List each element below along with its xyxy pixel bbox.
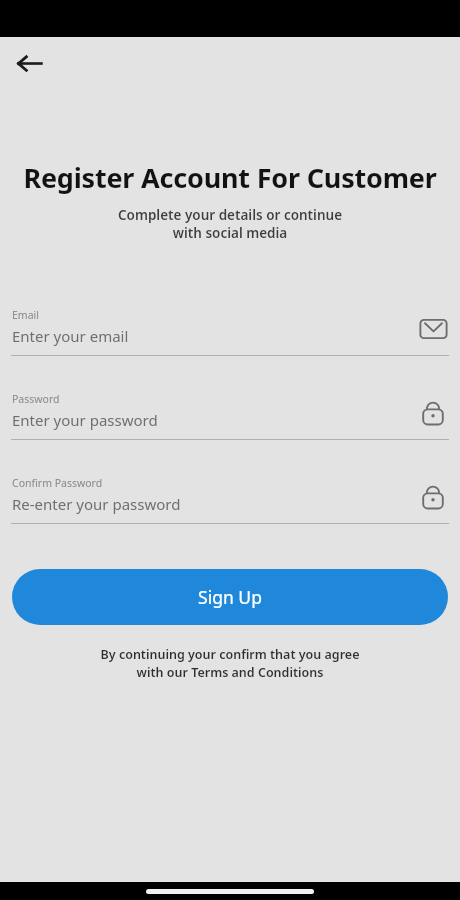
staticText: Enter your password — [12, 410, 158, 430]
staticText: Re-enter your password — [12, 494, 181, 514]
button[interactable]: Back — [10, 43, 50, 83]
staticText: Enter your email — [12, 326, 129, 346]
other: Password — [418, 398, 448, 428]
button[interactable]: Sign Up — [12, 569, 448, 625]
staticText: Register Account For Customer — [0, 159, 460, 196]
staticText: Email — [12, 308, 39, 322]
staticText: Sign Up — [198, 585, 262, 609]
other: Confirm password — [418, 482, 448, 512]
button[interactable]: Email — [0, 308, 460, 356]
staticText: Complete your details or continue with s… — [0, 206, 460, 242]
button[interactable]: Confirm Password — [0, 476, 460, 524]
button[interactable]: Password — [0, 392, 460, 440]
staticText: By continuing your confirm that you agre… — [0, 646, 460, 681]
staticText: Confirm Password — [12, 476, 103, 490]
staticText: Password — [12, 392, 60, 406]
button[interactable]: By continuing your confirm that you agre… — [0, 646, 460, 681]
other: Email — [418, 314, 448, 344]
